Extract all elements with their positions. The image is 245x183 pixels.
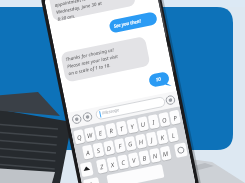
- button[interactable]: Appointment reminder text messaging on a…: [0, 0, 245, 183]
